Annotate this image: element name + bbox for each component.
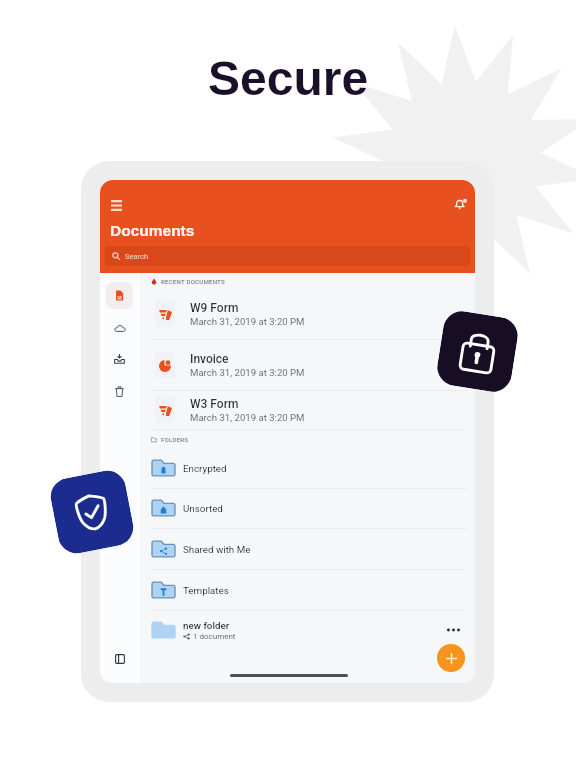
staticText: Shared with Me [183,544,251,555]
button[interactable]: Menu [105,194,127,216]
staticText: Encrypted [183,463,227,474]
button[interactable]: Unsorted [141,488,475,528]
button[interactable]: Invoice [141,340,475,390]
button[interactable]: Shared with Me [141,529,475,569]
button[interactable]: new folder [141,610,475,650]
staticText: Invoice [190,352,229,366]
staticText: 1 document [193,632,236,641]
button[interactable]: W3 Form [141,391,475,429]
button[interactable]: Encrypted [141,448,475,488]
button[interactable]: Cloud storage [109,318,130,339]
staticText: Documents [110,222,195,239]
button[interactable]: Templates [141,570,475,610]
staticText: Search [125,252,149,261]
button[interactable]: Notifications [450,194,472,216]
button[interactable]: Toggle sidebar [110,649,130,669]
button[interactable]: Inbox [109,348,130,369]
staticText: W9 Form [190,301,239,315]
staticText: RECENT DOCUMENTS [161,278,225,285]
button[interactable]: More options [443,620,463,640]
staticText: new folder [183,620,230,631]
button[interactable]: Add [437,644,465,672]
staticText: Unsorted [183,503,223,514]
staticText: March 31, 2019 at 3:20 PM [190,412,305,423]
staticText: Templates [183,585,229,596]
staticText: Secure [208,52,369,106]
button[interactable]: My documents [106,282,133,309]
staticText: March 31, 2019 at 3:20 PM [190,316,305,327]
staticText: FOLDERS [161,436,189,443]
button[interactable]: Trash [109,381,130,402]
button[interactable]: Search [105,246,470,266]
staticText: W3 Form [190,397,239,411]
staticText: March 31, 2019 at 3:20 PM [190,367,305,378]
button[interactable]: W9 Form [141,289,475,339]
